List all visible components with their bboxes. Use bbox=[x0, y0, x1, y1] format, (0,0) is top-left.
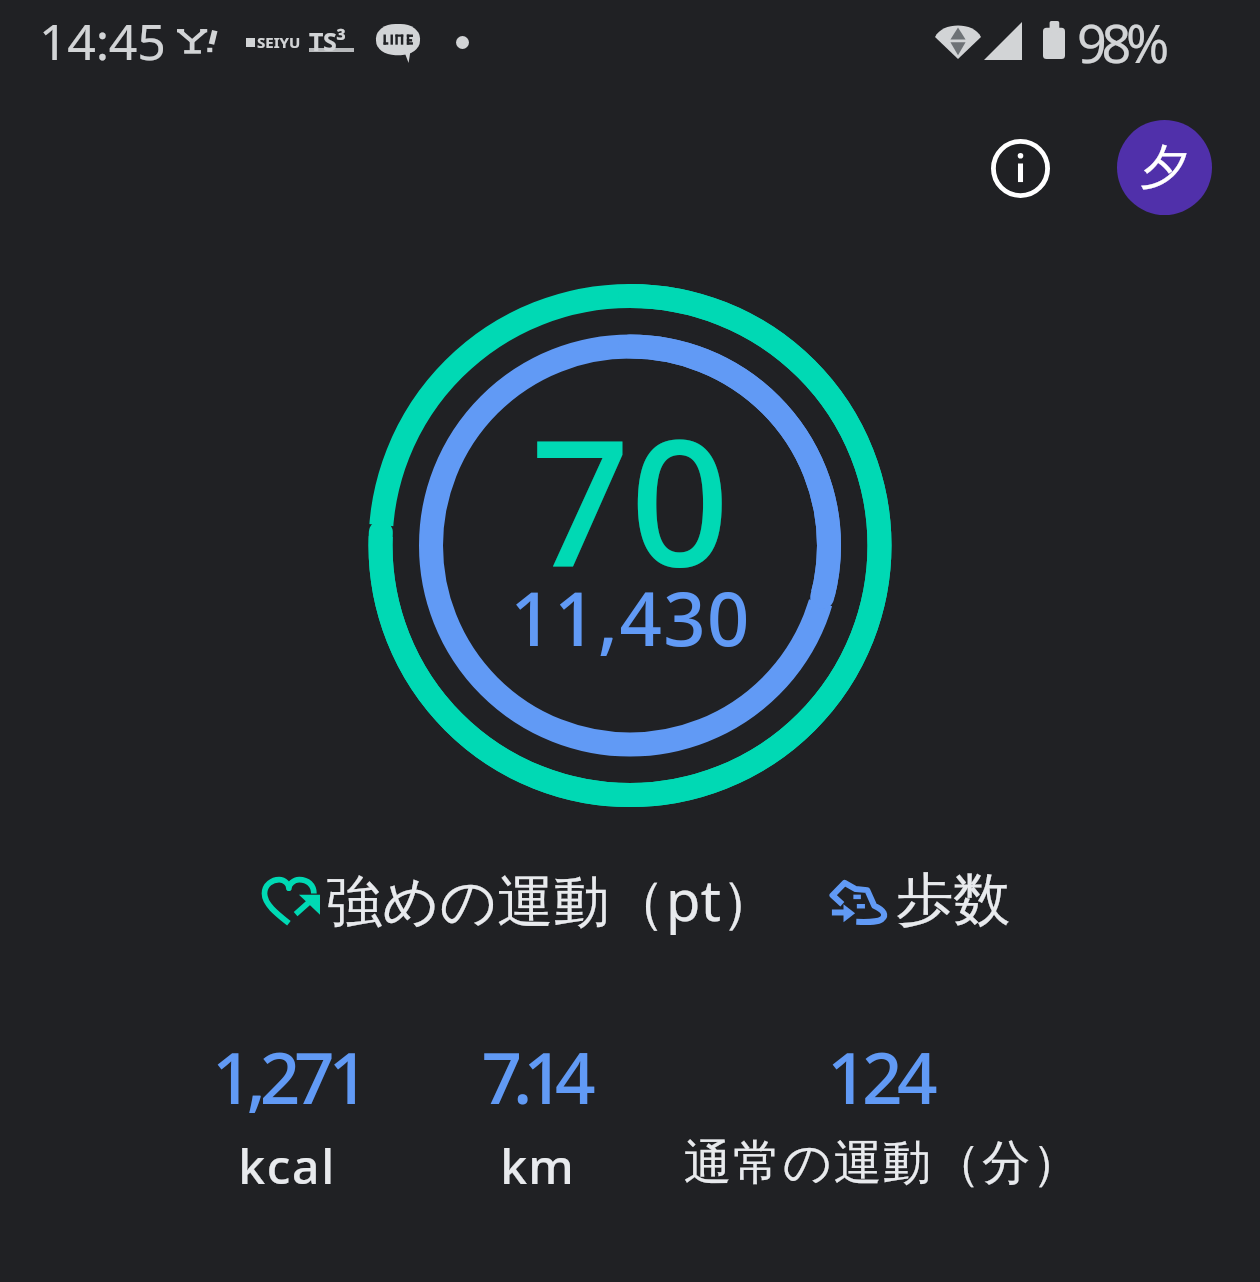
button[interactable]: 歩数 bbox=[829, 864, 1011, 936]
staticText: km bbox=[500, 1133, 575, 1198]
button[interactable]: 7.14 bbox=[449, 1028, 619, 1208]
staticText: 1,271 bbox=[212, 1028, 363, 1125]
staticText: 14:45 bbox=[39, 7, 166, 75]
staticText: 歩数 bbox=[896, 864, 1011, 936]
staticText: 11,430 bbox=[510, 567, 751, 668]
staticText: 124 bbox=[827, 1028, 932, 1125]
button[interactable]: Profile bbox=[1117, 120, 1212, 215]
staticText: 夕 bbox=[1140, 137, 1189, 199]
staticText: 7.14 bbox=[481, 1028, 587, 1125]
staticText: TS³ bbox=[309, 24, 346, 58]
staticText: 98% bbox=[1077, 7, 1165, 78]
staticText: SEIYU bbox=[257, 32, 301, 52]
staticText: 強めの運動（pt） bbox=[326, 861, 778, 937]
staticText: 70 bbox=[530, 380, 730, 617]
staticText: 通常の運動（分） bbox=[683, 1133, 1082, 1193]
button[interactable]: Info bbox=[973, 121, 1067, 215]
button[interactable]: 124 bbox=[699, 1028, 1059, 1208]
staticText: kcal bbox=[238, 1133, 336, 1198]
button[interactable]: 強めの運動（pt） bbox=[259, 861, 778, 937]
button[interactable]: 1,271 bbox=[198, 1028, 376, 1208]
